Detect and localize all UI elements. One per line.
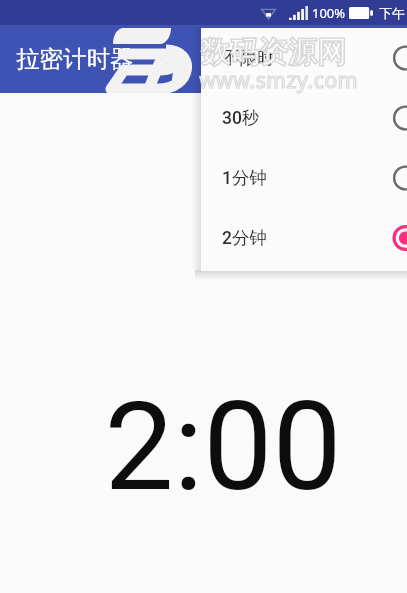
staticText: www.smzy.com bbox=[199, 66, 358, 95]
button[interactable]: 1分钟 bbox=[201, 148, 407, 208]
staticText: 下午 bbox=[379, 5, 405, 21]
staticText: 不限时 bbox=[222, 47, 275, 69]
other: Wi-Fi bbox=[261, 7, 276, 19]
staticText: 30秒 bbox=[222, 107, 260, 129]
button[interactable]: 不限时 bbox=[201, 28, 407, 88]
staticText: 100% bbox=[312, 4, 346, 22]
staticText: 2分钟 bbox=[222, 227, 267, 249]
staticText: 2:00 bbox=[104, 375, 342, 519]
staticText: 数码资源网 bbox=[201, 34, 346, 71]
staticText: 拉密计时器 bbox=[16, 44, 134, 74]
staticText: www.smzy.com bbox=[199, 66, 358, 95]
button[interactable]: 2分钟 bbox=[201, 208, 407, 268]
button[interactable]: 30秒 bbox=[201, 88, 407, 148]
other: Battery bbox=[349, 7, 373, 19]
staticText: 1分钟 bbox=[222, 167, 267, 189]
staticText: 数码资源网 bbox=[201, 34, 346, 71]
other: Signal strength bbox=[289, 6, 308, 20]
